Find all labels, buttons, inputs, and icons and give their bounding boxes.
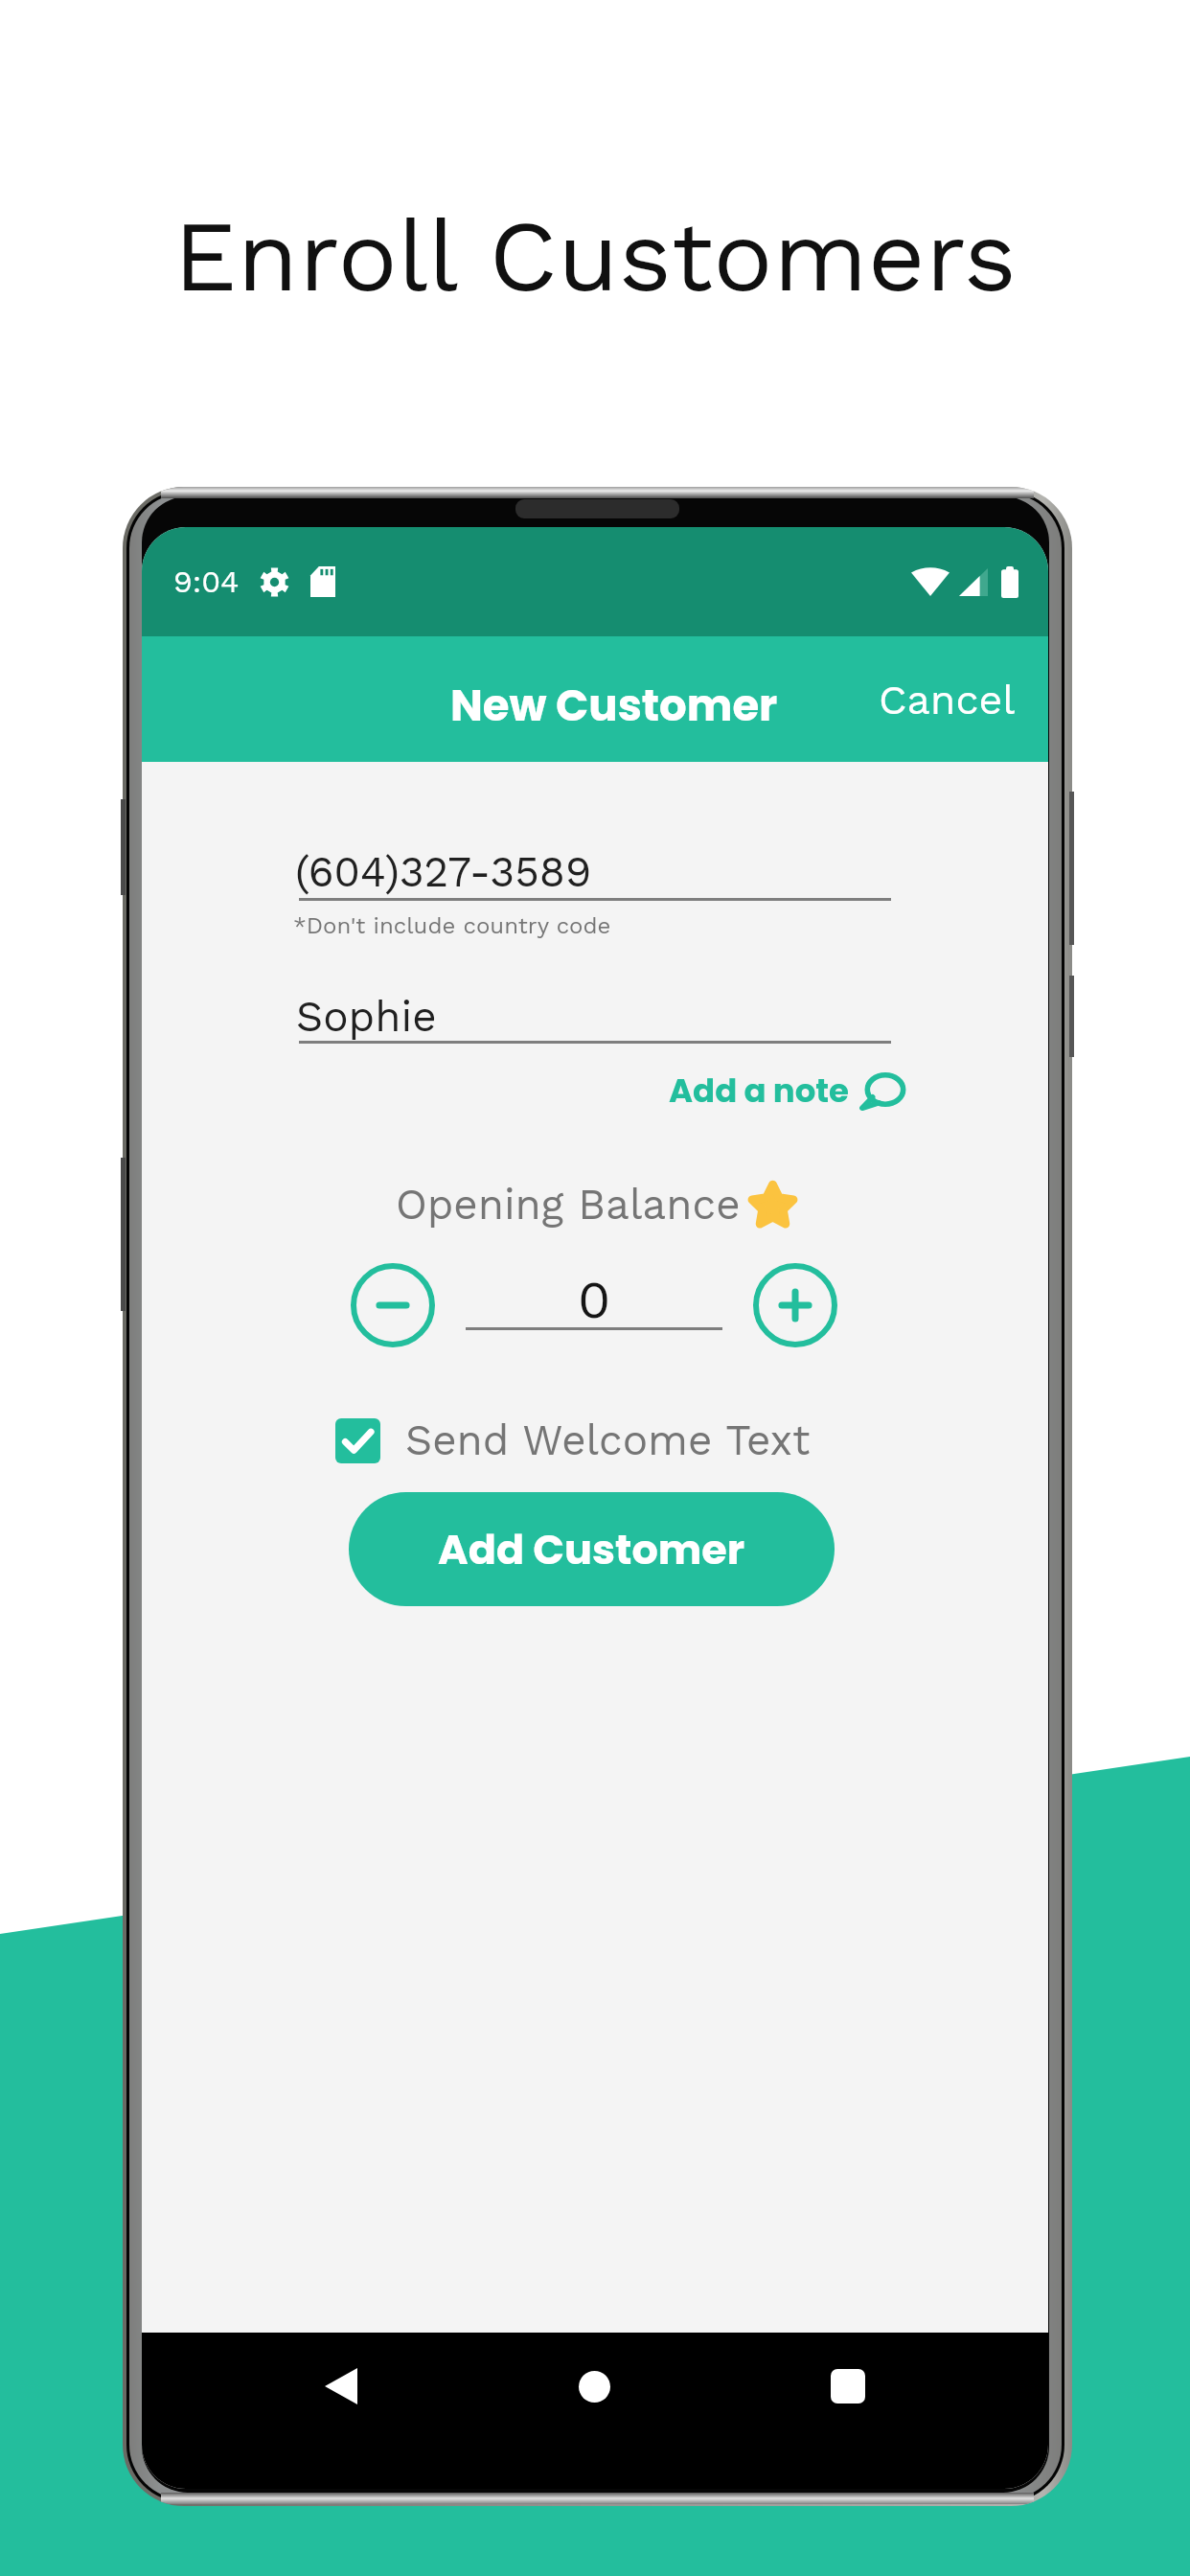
staticText: Send Welcome Text: [405, 1415, 811, 1465]
button[interactable]: Send Welcome Text: [335, 1415, 811, 1465]
button[interactable]: Decrease opening balance: [351, 1263, 435, 1347]
button[interactable]: Recent apps: [819, 2357, 877, 2415]
button[interactable]: Back: [312, 2357, 370, 2415]
staticText: (604)327-3589: [295, 847, 592, 897]
staticText: New Customer: [450, 676, 778, 736]
staticText: Sophie: [296, 992, 437, 1042]
button[interactable]: Cancel: [859, 656, 1035, 743]
button[interactable]: Add Customer: [349, 1492, 835, 1606]
staticText: Add a note: [669, 1068, 850, 1114]
staticText: Cancel: [879, 676, 1016, 724]
staticText: 0: [578, 1269, 611, 1331]
staticText: Enroll Customers: [173, 197, 1017, 314]
staticText: Add Customer: [438, 1521, 745, 1578]
button[interactable]: Increase opening balance: [753, 1263, 837, 1347]
button[interactable]: Home: [565, 2357, 623, 2415]
staticText: 9:04: [173, 563, 240, 600]
button[interactable]: Add a note: [661, 1060, 912, 1121]
staticText: Opening Balance: [396, 1180, 741, 1230]
staticText: *Don't include country code: [293, 912, 611, 939]
